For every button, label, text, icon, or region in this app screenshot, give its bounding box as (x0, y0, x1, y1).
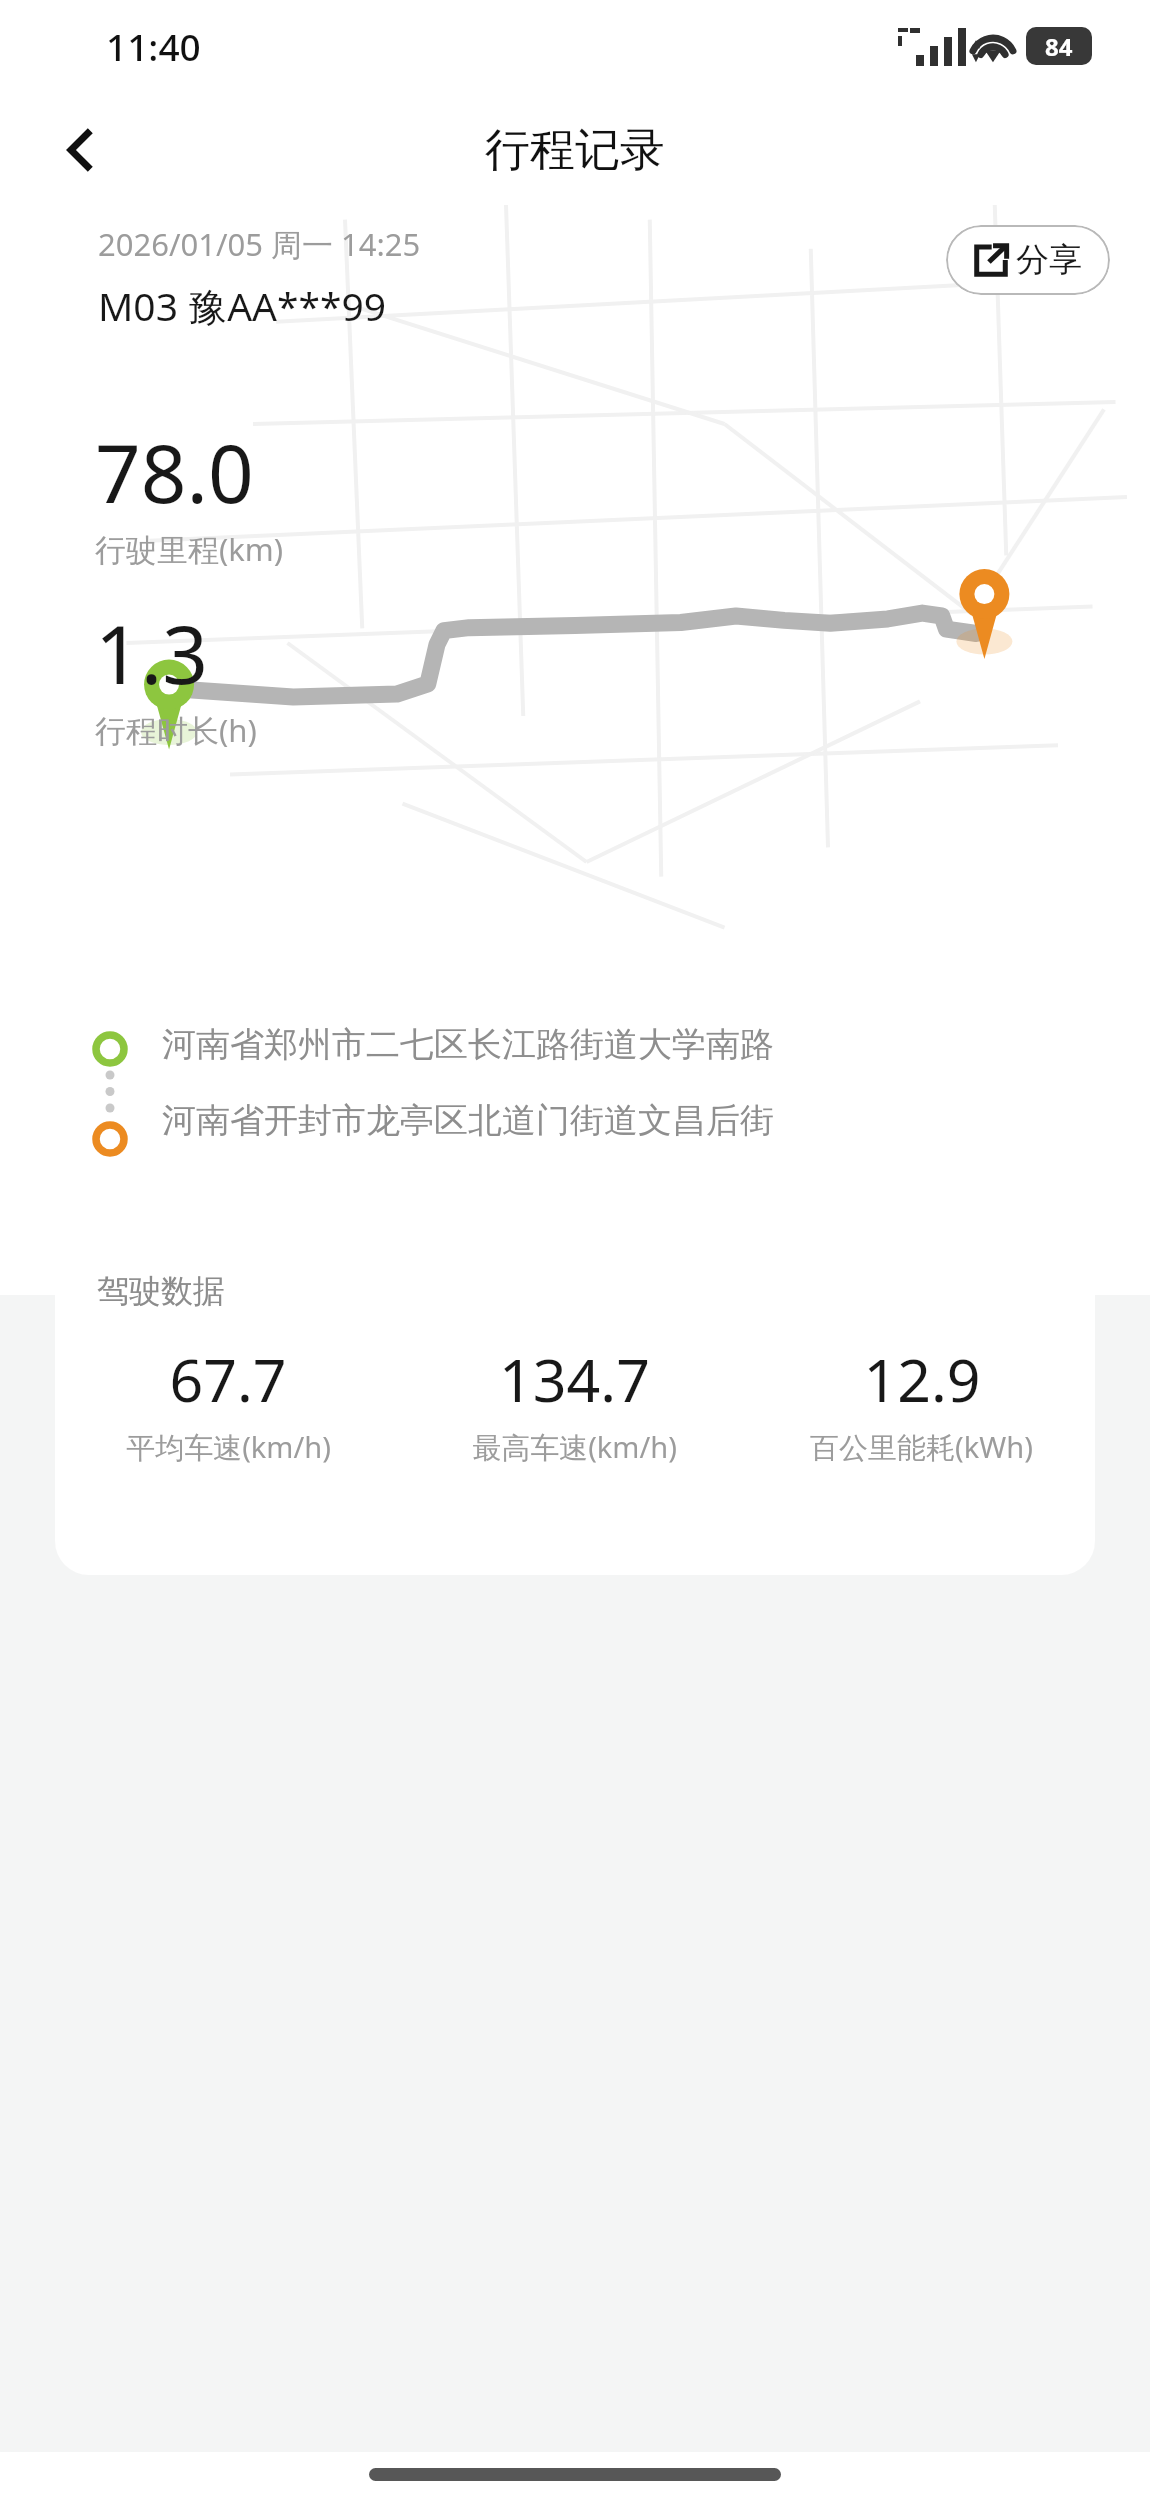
staticText: 78.0 (95, 417, 254, 526)
staticText: 1.3 (95, 598, 208, 707)
staticText: 行程记录 (485, 122, 665, 179)
staticText: 67.7 (169, 1339, 287, 1419)
staticText: M03 豫AA***99 (98, 279, 387, 332)
staticText: 84 (1045, 30, 1073, 63)
staticText: 行驶里程(km) (95, 528, 284, 570)
button[interactable]: Back (36, 104, 128, 196)
staticText: 平均车速(km/h) (126, 1427, 331, 1467)
button[interactable]: 分享 (946, 225, 1110, 295)
staticText: 分享 (1016, 239, 1082, 281)
staticText: 2026/01/05 周一 14:25 (98, 223, 421, 265)
staticText: 11:40 (106, 21, 201, 71)
staticText: 12.9 (863, 1339, 981, 1419)
staticText: 行程时长(h) (95, 709, 257, 751)
staticText: 最高车速(km/h) (472, 1427, 677, 1467)
staticText: 河南省开封市龙亭区北道门街道文昌后街 (162, 1099, 774, 1142)
button[interactable]: 驾驶数据 (55, 1227, 1095, 1575)
staticText: 百公里能耗(kWh) (810, 1427, 1033, 1467)
staticText: 河南省郑州市二七区长江路街道大学南路 (162, 1023, 774, 1066)
staticText: 134.7 (499, 1339, 650, 1419)
staticText: 驾驶数据 (97, 1271, 225, 1311)
